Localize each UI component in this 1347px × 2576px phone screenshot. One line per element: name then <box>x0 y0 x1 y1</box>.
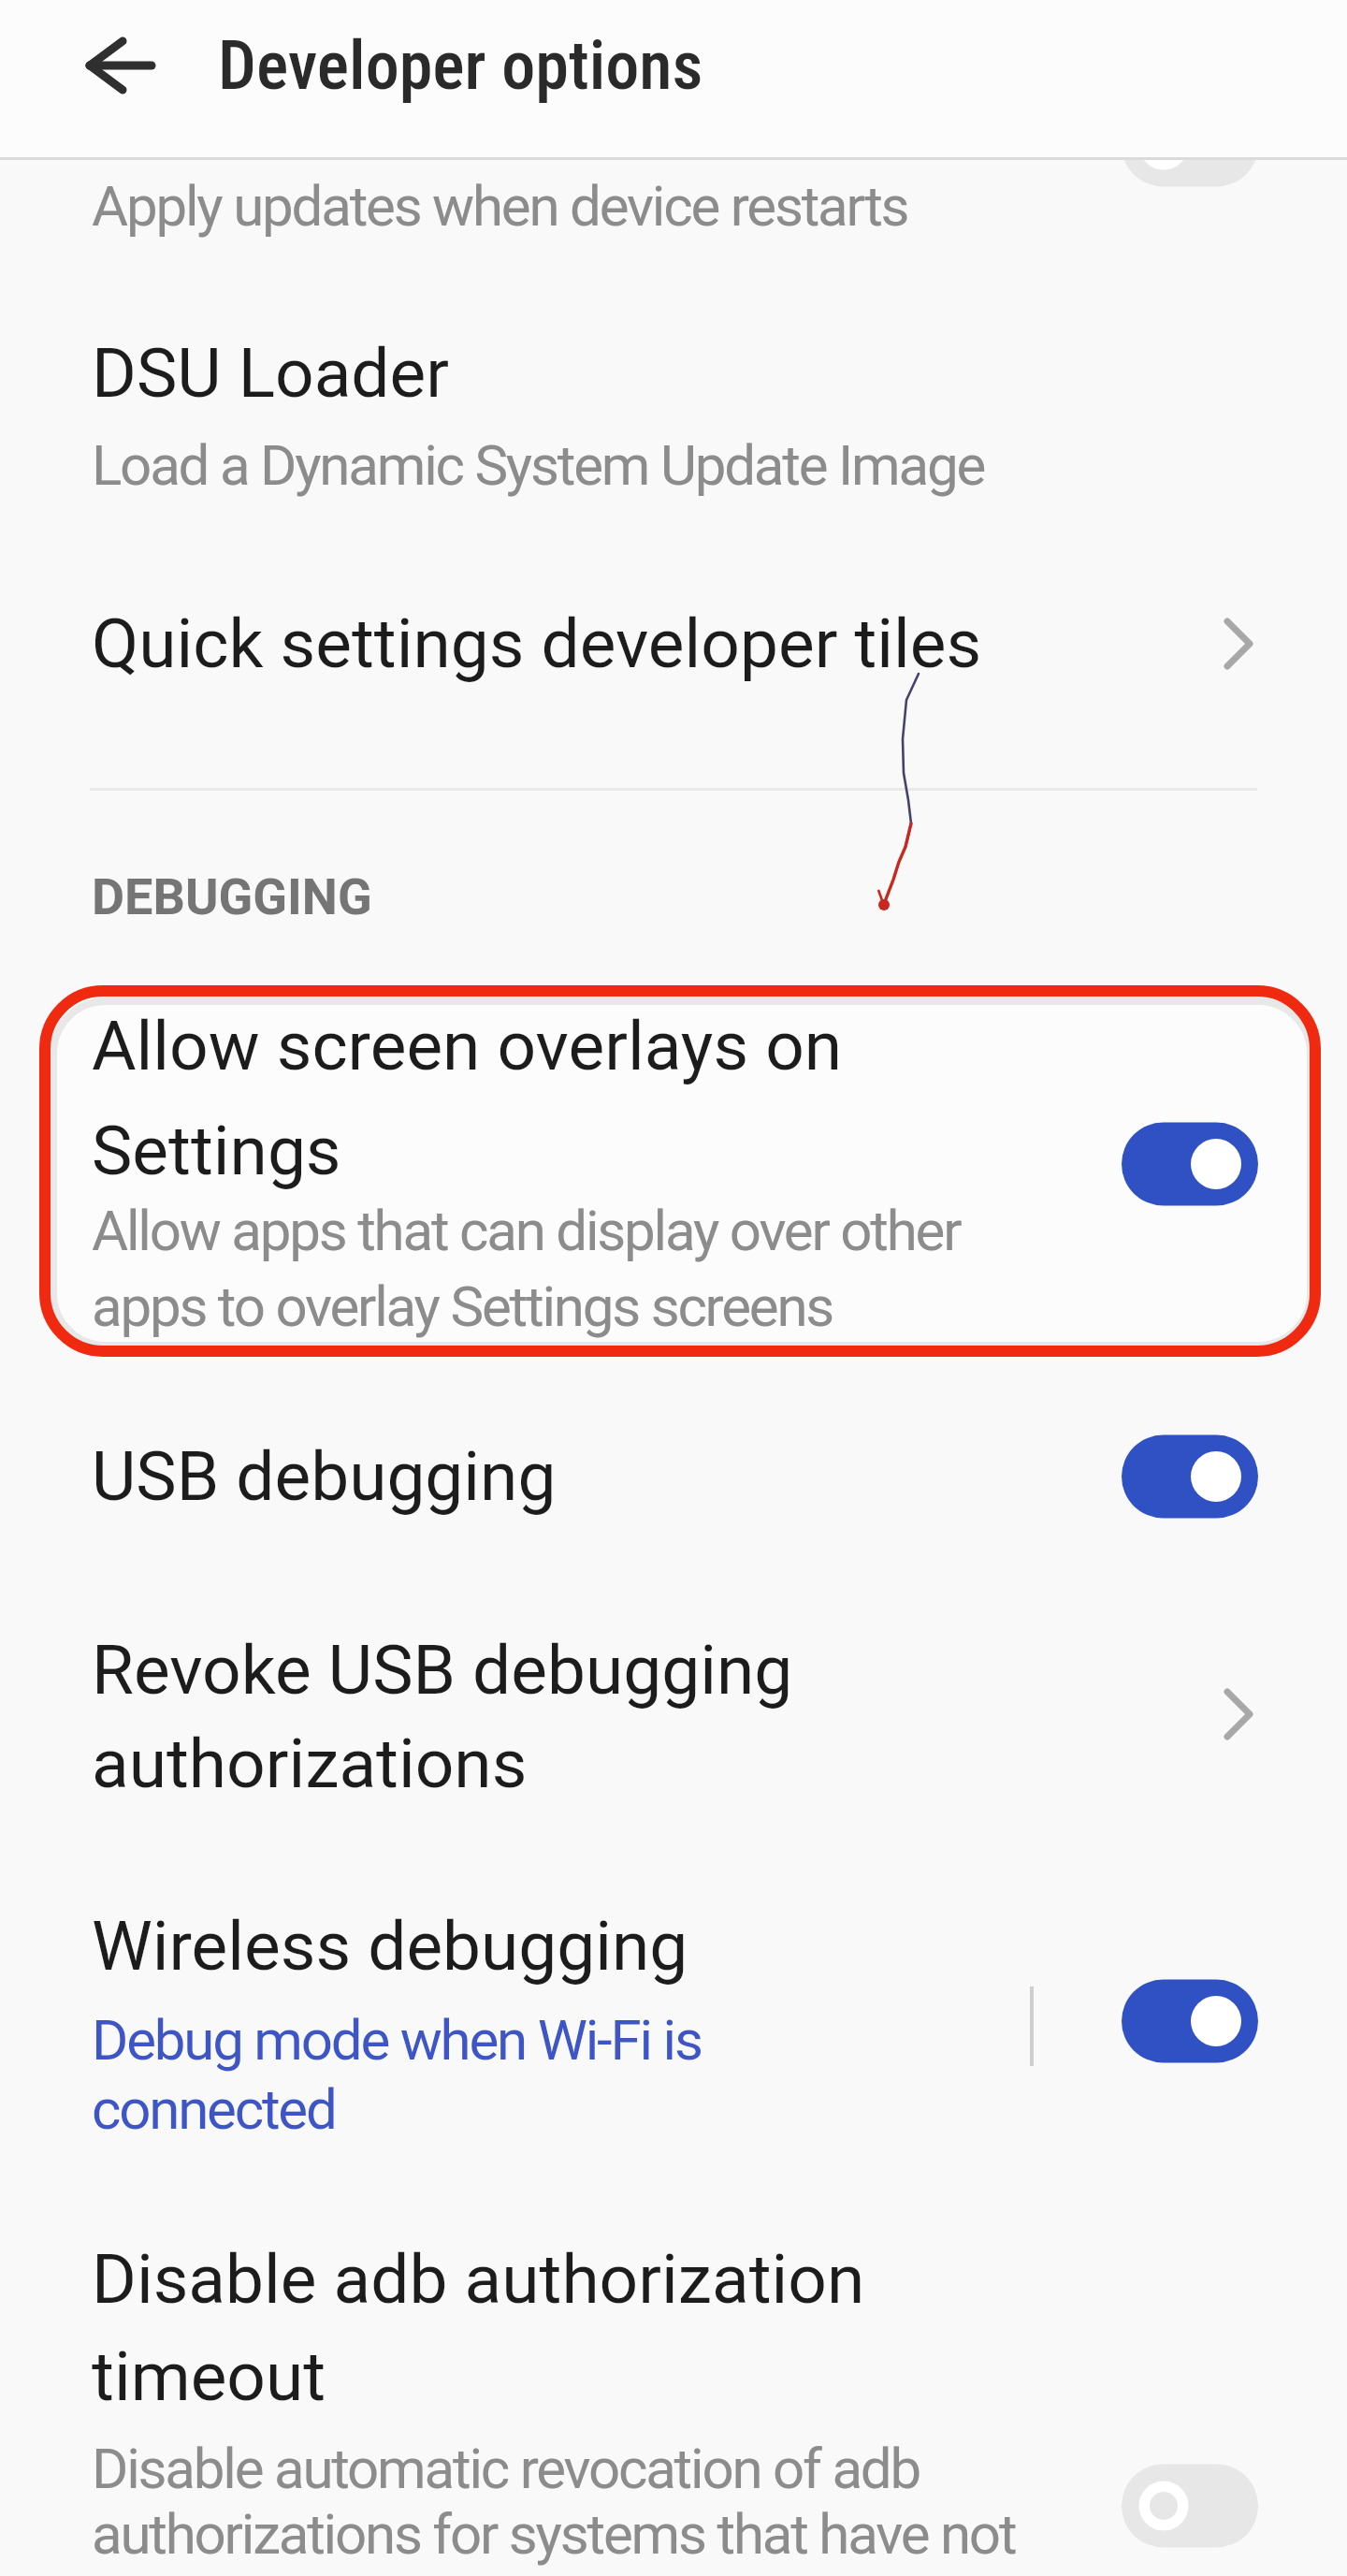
staticText: timeout <box>92 2336 326 2417</box>
button[interactable] <box>0 309 1347 533</box>
staticText: Quick settings developer tiles <box>92 604 982 684</box>
button[interactable] <box>1122 1434 1258 1519</box>
staticText: Developer options <box>218 26 703 105</box>
staticText: apps to overlay Settings screens <box>92 1273 833 1339</box>
staticText: Settings <box>92 1111 341 1191</box>
button[interactable] <box>56 9 187 140</box>
staticText: Allow screen overlays on <box>92 1006 843 1086</box>
button[interactable] <box>1122 1122 1258 1206</box>
button[interactable] <box>1122 1979 1258 2063</box>
button[interactable] <box>0 552 1347 739</box>
staticText: authorizations <box>92 1724 528 1804</box>
staticText: Debug mode when Wi-Fi is <box>92 2007 702 2073</box>
staticText: Allow apps that can display over other <box>92 1198 961 1263</box>
staticText: Load a Dynamic System Update Image <box>92 432 985 498</box>
staticText: authorizations for systems that have not <box>92 2501 1016 2567</box>
button[interactable] <box>0 1394 1347 1563</box>
staticText: Wireless debugging <box>92 1906 688 1987</box>
staticText: connected <box>92 2076 336 2142</box>
staticText: Revoke USB debugging <box>92 1630 793 1710</box>
button[interactable] <box>1122 2464 1258 2548</box>
button[interactable] <box>0 992 1347 1357</box>
staticText: Disable automatic revocation of adb <box>92 2436 920 2501</box>
staticText: DEBUGGING <box>92 867 372 926</box>
staticText: Apply updates when device restarts <box>92 173 908 239</box>
button[interactable] <box>0 2218 1347 2576</box>
button[interactable] <box>0 1591 1347 1834</box>
button[interactable] <box>1122 103 1258 187</box>
staticText: DSU Loader <box>92 333 449 414</box>
staticText: Disable adb authorization <box>92 2239 865 2320</box>
button[interactable] <box>0 159 1347 299</box>
button[interactable] <box>0 1881 1347 2161</box>
staticText: USB debugging <box>92 1436 557 1517</box>
